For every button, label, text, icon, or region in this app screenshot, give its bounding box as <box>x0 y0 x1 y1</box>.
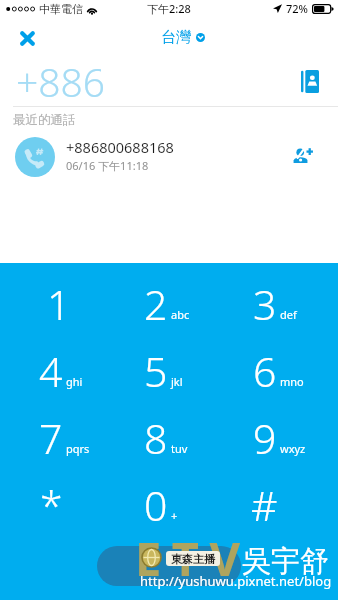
staticText: + <box>171 508 178 523</box>
button[interactable]: 7 <box>0 407 112 474</box>
staticText: http://yushuwu.pixnet.net/blog <box>140 572 332 590</box>
staticText: 8 <box>144 410 168 466</box>
staticText: wxyz <box>280 441 306 456</box>
staticText: mno <box>280 374 304 389</box>
staticText: 台灣 <box>161 28 191 47</box>
button[interactable]: * <box>0 474 112 541</box>
button[interactable]: 8 <box>112 407 225 474</box>
button[interactable]: 2 <box>112 273 225 340</box>
staticText: 0 <box>144 477 168 533</box>
staticText: pqrs <box>66 441 90 456</box>
staticText: # <box>251 477 277 533</box>
staticText: 4 <box>39 343 63 399</box>
staticText: 72% <box>286 1 308 16</box>
staticText: ETV <box>135 526 251 590</box>
staticText: +886800688168 <box>66 137 174 157</box>
staticText: 5 <box>144 343 168 399</box>
staticText: 中華電信 <box>39 2 83 16</box>
staticText: 下午2:28 <box>147 1 191 16</box>
button[interactable]: Add contact <box>286 139 318 171</box>
staticText: 06/16 下午11:18 <box>66 158 149 173</box>
button[interactable]: Call <box>97 546 241 586</box>
staticText: 3 <box>253 276 277 332</box>
staticText: ghi <box>66 374 83 389</box>
staticText: abc <box>171 307 190 322</box>
button[interactable]: Close <box>11 22 43 54</box>
staticText: * <box>40 477 63 533</box>
button[interactable]: # <box>225 474 338 541</box>
staticText: 6 <box>253 343 277 399</box>
button[interactable]: 3 <box>225 273 338 340</box>
button[interactable]: 9 <box>225 407 338 474</box>
button[interactable]: 4 <box>0 340 112 407</box>
staticText: 東森主播 <box>171 552 215 566</box>
button[interactable]: 1 <box>0 273 112 340</box>
button[interactable]: 0 <box>112 474 225 541</box>
staticText: tuv <box>171 441 188 456</box>
staticText: 7 <box>39 410 63 466</box>
button[interactable]: 台灣 <box>161 28 205 47</box>
button[interactable]: +886800688168 <box>0 130 338 184</box>
button[interactable]: Contacts <box>293 64 327 98</box>
staticText: 吳宇舒 <box>242 543 329 580</box>
button[interactable]: 5 <box>112 340 225 407</box>
staticText: 9 <box>253 410 277 466</box>
staticText: 1 <box>47 276 71 332</box>
button[interactable]: 6 <box>225 340 338 407</box>
staticText: 最近的通話 <box>13 112 76 128</box>
staticText: +886 <box>16 55 106 107</box>
staticText: def <box>280 307 297 322</box>
staticText: 2 <box>144 276 168 332</box>
staticText: jkl <box>171 374 183 389</box>
